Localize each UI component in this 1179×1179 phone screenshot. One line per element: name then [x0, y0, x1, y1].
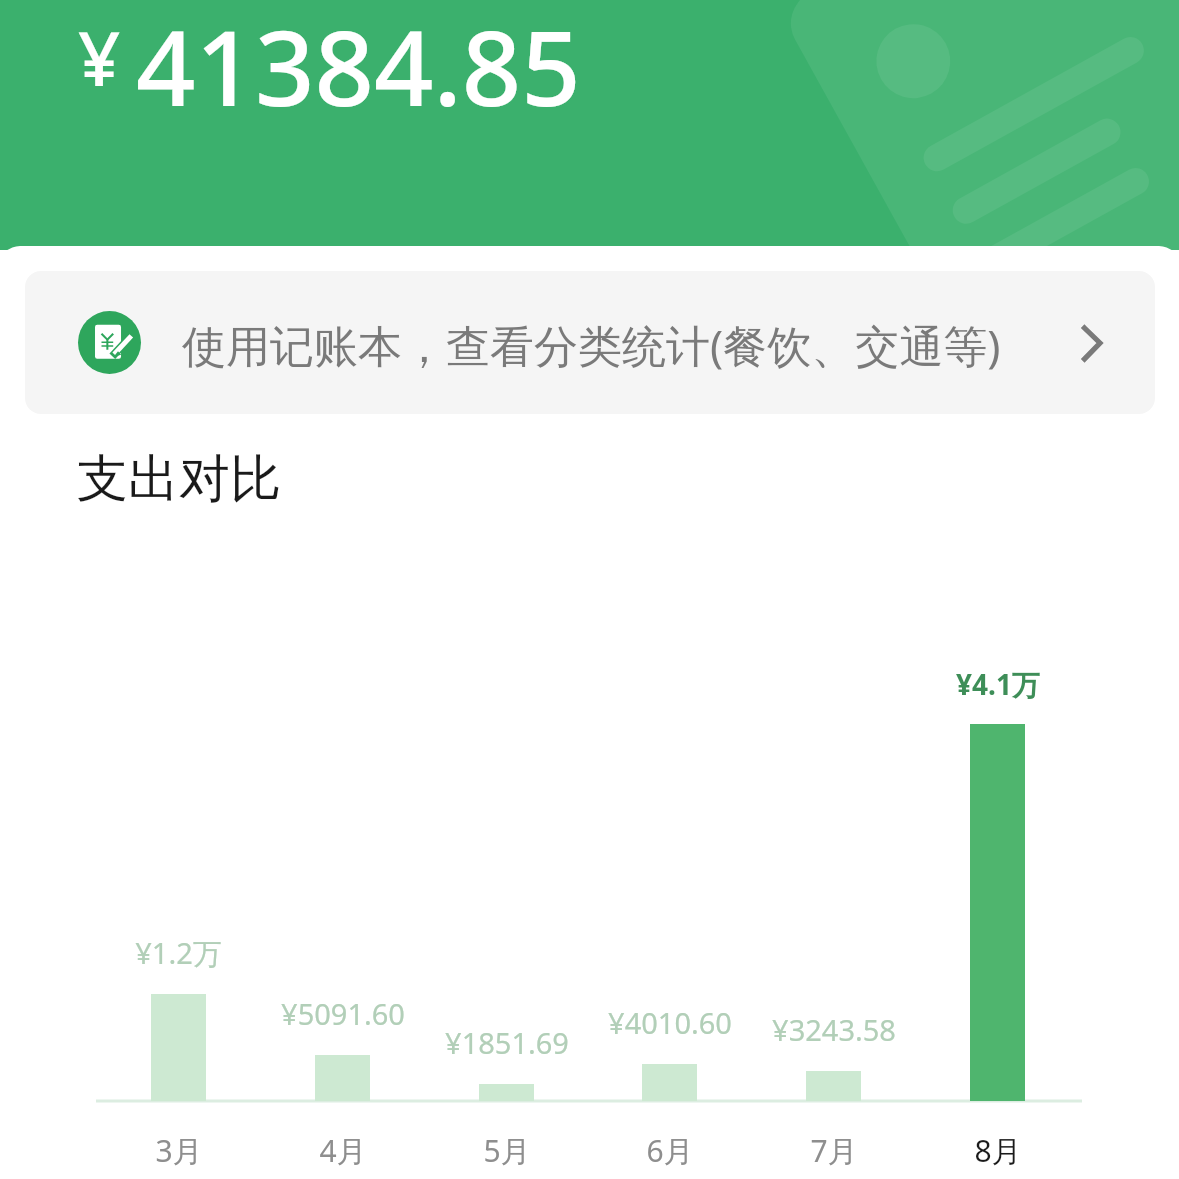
button[interactable]: 6月 ¥4010.60	[588, 600, 751, 1179]
staticText: ¥3243.58	[772, 1010, 896, 1049]
staticText: 4月	[319, 1130, 367, 1171]
staticText: ¥4010.60	[608, 1003, 732, 1042]
staticText: ¥5091.60	[281, 994, 405, 1033]
staticText: 41384.85	[136, 0, 581, 137]
staticText: 5月	[483, 1130, 531, 1171]
staticText: ¥1.2万	[135, 933, 222, 973]
staticText: ¥1851.69	[445, 1023, 569, 1062]
button[interactable]: 5月 ¥1851.69	[425, 600, 588, 1179]
button[interactable]: 使用记账本，查看分类统计(餐饮、交通等)	[25, 271, 1155, 414]
staticText: 支出对比	[77, 447, 281, 511]
staticText: 7月	[810, 1130, 858, 1171]
staticText: 使用记账本，查看分类统计(餐饮、交通等)	[182, 315, 1001, 375]
button[interactable]: 3月 ¥1.2万	[97, 600, 260, 1179]
button[interactable]: 7月 ¥3243.58	[752, 600, 915, 1179]
staticText: ¥4.1万	[956, 665, 1040, 703]
button[interactable]: 4月 ¥5091.60	[261, 600, 424, 1179]
staticText: 8月	[974, 1130, 1022, 1171]
button[interactable]: 查看分类统计	[1064, 307, 1120, 363]
button[interactable]: 8月 ¥4.1万	[916, 600, 1079, 1179]
staticText: ¥	[78, 7, 121, 108]
staticText: 3月	[155, 1130, 203, 1171]
staticText: 6月	[646, 1130, 694, 1171]
